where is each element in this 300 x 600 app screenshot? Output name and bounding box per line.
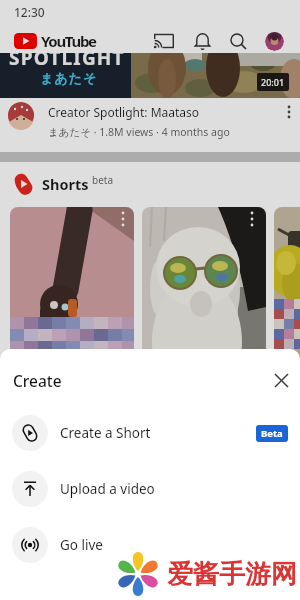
staticText: SPOTLIGHT <box>9 53 125 71</box>
staticText: 12:30 <box>14 4 45 20</box>
button[interactable] <box>194 32 211 50</box>
staticText: Shorts <box>42 174 89 194</box>
button[interactable]: Go live <box>0 517 300 573</box>
button[interactable] <box>274 207 300 427</box>
staticText: YouTube <box>41 31 96 51</box>
button[interactable]: Create a Short <box>0 405 300 461</box>
button[interactable]: SPOTLIGHT <box>0 53 300 98</box>
staticText: 爱酱手游网 <box>167 558 297 591</box>
button[interactable] <box>230 33 247 50</box>
button[interactable] <box>265 32 284 51</box>
staticText: 20:01 <box>261 76 285 88</box>
staticText: Beta <box>261 427 283 440</box>
staticText: Upload a video <box>60 480 155 498</box>
staticText: beta <box>92 173 114 187</box>
button[interactable]: Upload a video <box>0 461 300 517</box>
button[interactable] <box>262 361 300 399</box>
button[interactable] <box>10 207 134 427</box>
button[interactable] <box>154 33 174 49</box>
button[interactable]: Creator Spotlight: Maataso <box>0 98 300 152</box>
staticText: Create <box>13 370 62 391</box>
staticText: Create a Short <box>60 424 151 442</box>
staticText: Creator Spotlight: Maataso <box>48 104 200 120</box>
staticText: まあたそ <box>40 70 98 86</box>
staticText: Go live <box>60 536 103 554</box>
staticText: まあたそ · 1.8M views · 4 months ago <box>48 125 230 139</box>
button[interactable] <box>142 207 266 427</box>
